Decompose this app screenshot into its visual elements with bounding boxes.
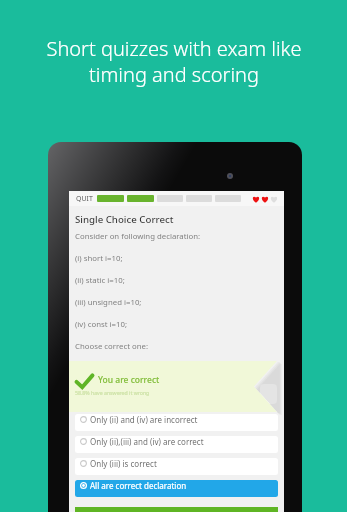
staticText: Only (iii) is correct [90,458,157,469]
staticText: (i) short i=10; [75,253,123,264]
staticText: (ii) static i=10; [75,275,125,286]
button[interactable]: All are correct declaration [75,480,278,497]
staticText: Consider on following declaration: [75,231,201,242]
staticText: (iv) const i=10; [75,319,128,330]
button[interactable]: QUIT [76,194,93,204]
staticText: Single Choice Correct [75,213,174,226]
staticText: All are correct declaration [90,480,187,491]
staticText: Choose correct one: [75,341,149,352]
button[interactable]: Only (iii) is correct [75,458,278,475]
staticText: Only (ii) and (iv) are incorrect [90,414,198,425]
staticText: Only (ii),(iii) and (iv) are correct [90,436,204,447]
button[interactable]: Only (ii),(iii) and (iv) are correct [75,436,278,453]
staticText: Short quizzes with exam like timing and … [46,35,302,87]
staticText: (iii) unsigned i=10; [75,297,142,308]
button[interactable]: Only (ii) and (iv) are incorrect [75,414,278,431]
staticText: 58.8% have answered it wrong [75,389,150,396]
staticText: You are correct [98,374,160,386]
